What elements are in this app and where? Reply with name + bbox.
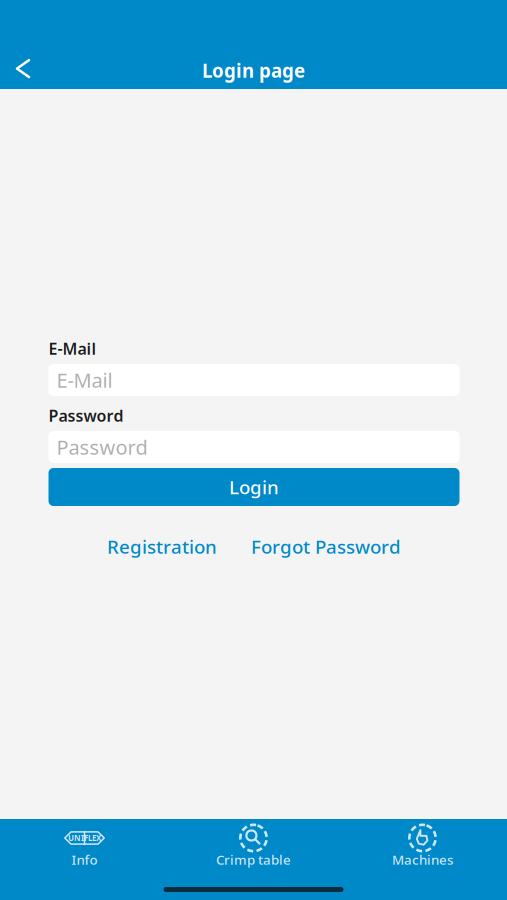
staticText: Machines xyxy=(392,851,453,868)
button[interactable]: Registration xyxy=(107,534,217,559)
staticText: Login xyxy=(229,475,279,499)
staticText: E-Mail xyxy=(56,367,112,393)
staticText: Registration xyxy=(107,534,217,559)
staticText: E-Mail xyxy=(48,338,96,359)
button[interactable]: E-Mail xyxy=(48,364,459,396)
staticText: Password xyxy=(56,434,147,460)
button[interactable]: Machines xyxy=(338,819,507,866)
staticText: Info xyxy=(71,851,97,868)
staticText: Crimp table xyxy=(216,851,291,868)
staticText: Forgot Password xyxy=(251,534,401,559)
staticText: Password xyxy=(48,405,123,426)
staticText: Login page xyxy=(202,58,305,83)
button[interactable]: Back xyxy=(1,47,45,91)
button[interactable]: Forgot Password xyxy=(251,534,401,559)
staticText: UNIFLEX xyxy=(68,833,101,843)
button[interactable]: UNIFLEX xyxy=(0,819,169,866)
button[interactable]: Crimp table xyxy=(169,819,338,866)
button[interactable]: Password xyxy=(48,431,459,463)
button[interactable]: Login xyxy=(48,468,459,506)
